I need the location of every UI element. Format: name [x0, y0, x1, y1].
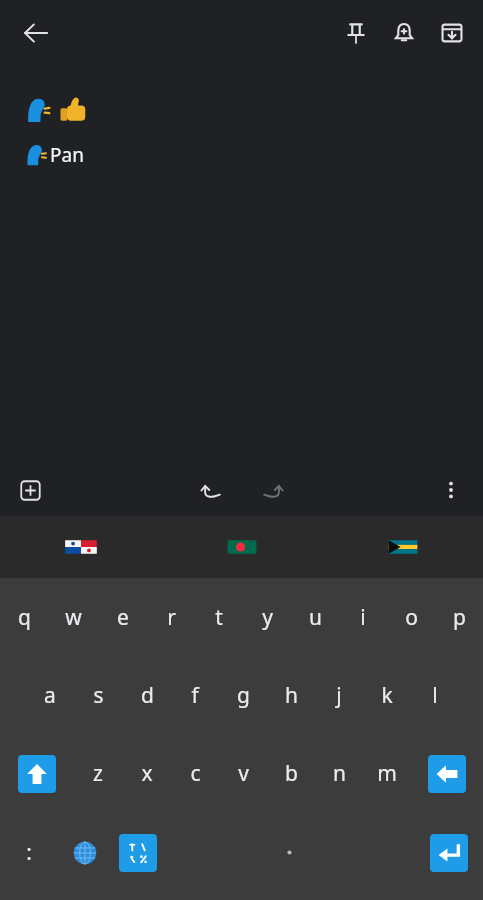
button[interactable]: b: [267, 734, 315, 813]
button[interactable]: g: [219, 656, 267, 734]
staticText: f: [191, 681, 199, 710]
button[interactable]: Panama flag: [0, 516, 161, 578]
button[interactable]: d: [123, 656, 171, 734]
button[interactable]: Undo: [188, 466, 236, 514]
staticText: q: [18, 603, 31, 632]
button[interactable]: h: [267, 656, 315, 734]
staticText: i: [360, 603, 366, 632]
button[interactable]: o: [387, 578, 435, 656]
staticText: u: [309, 603, 322, 632]
button[interactable]: j: [315, 656, 363, 734]
button[interactable]: s: [74, 656, 123, 734]
button[interactable]: y: [243, 578, 291, 656]
button[interactable]: m: [363, 734, 411, 813]
button[interactable]: c: [171, 734, 219, 813]
button[interactable]: p: [435, 578, 483, 656]
staticText: n: [333, 759, 346, 788]
staticText: v: [238, 759, 249, 788]
staticText: x: [141, 759, 153, 788]
button[interactable]: r: [147, 578, 195, 656]
button[interactable]: l: [411, 656, 459, 734]
staticText: r: [167, 603, 176, 632]
staticText: o: [405, 603, 418, 632]
staticText: m: [377, 759, 397, 788]
button[interactable]: k: [363, 656, 411, 734]
button[interactable]: Reminder: [380, 9, 428, 57]
button[interactable]: w: [49, 578, 98, 656]
button[interactable]: v: [219, 734, 267, 813]
button[interactable]: x: [122, 734, 171, 813]
button[interactable]: z: [73, 734, 122, 813]
button[interactable]: Bahamas flag: [322, 516, 483, 578]
staticText: g: [237, 681, 250, 710]
button[interactable]: n: [315, 734, 363, 813]
button[interactable]: Archive: [428, 9, 476, 57]
button[interactable]: Shift: [0, 734, 73, 813]
button[interactable]: Enter: [415, 813, 483, 892]
staticText: c: [190, 759, 201, 788]
staticText: b: [285, 759, 298, 788]
staticText: y: [262, 603, 273, 632]
staticText: Pan: [50, 142, 84, 168]
button[interactable]: Symbols: [111, 813, 164, 892]
staticText: h: [285, 681, 298, 710]
button[interactable]: a: [25, 656, 74, 734]
button[interactable]: Back: [12, 9, 60, 57]
staticText: :: [26, 838, 32, 867]
staticText: a: [44, 681, 56, 710]
button[interactable]: Add: [8, 468, 52, 512]
button[interactable]: Pan: [0, 66, 483, 464]
button[interactable]: Change language: [58, 813, 111, 892]
button[interactable]: e: [98, 578, 147, 656]
button[interactable]: u: [291, 578, 339, 656]
staticText: s: [93, 681, 104, 710]
button[interactable]: f: [171, 656, 219, 734]
staticText: p: [453, 603, 466, 632]
button[interactable]: t: [195, 578, 243, 656]
staticText: t: [215, 603, 223, 632]
button[interactable]: Pin note: [332, 9, 380, 57]
staticText: z: [93, 759, 103, 788]
button[interactable]: Redo: [247, 466, 295, 514]
button[interactable]: q: [0, 578, 49, 656]
staticText: e: [117, 603, 129, 632]
staticText: l: [432, 681, 438, 710]
staticText: d: [141, 681, 154, 710]
button[interactable]: Backspace: [411, 734, 483, 813]
button[interactable]: Bangladesh flag: [161, 516, 322, 578]
staticText: k: [381, 681, 393, 710]
button[interactable]: :: [0, 813, 58, 892]
button[interactable]: More options: [429, 468, 473, 512]
button[interactable]: i: [339, 578, 387, 656]
staticText: j: [336, 681, 342, 710]
staticText: w: [65, 603, 82, 632]
